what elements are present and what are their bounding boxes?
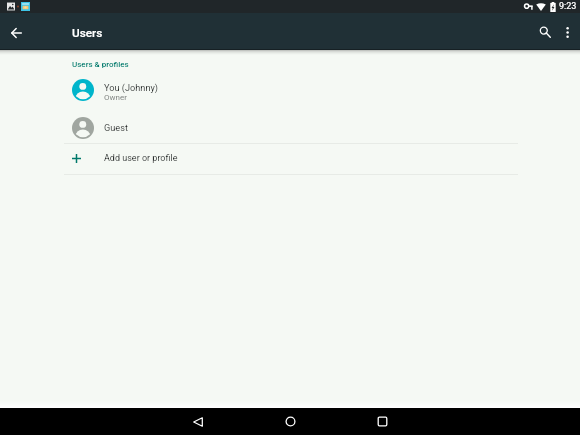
button[interactable]: Back [152,408,244,435]
button[interactable]: More options [554,19,580,45]
button[interactable]: Search [530,17,560,47]
button[interactable]: You (Johnny) [0,71,580,108]
staticText: 9:23 [559,1,577,12]
button[interactable]: Home [244,408,336,435]
button[interactable]: Add user or profile [0,142,580,175]
staticText: Users [72,26,103,40]
button[interactable]: Guest [0,109,580,146]
button[interactable]: Recent apps [336,408,428,435]
staticText: Guest [104,122,128,133]
staticText: Users & profiles [72,60,129,69]
staticText: You (Johnny) [104,82,159,93]
staticText: Add user or profile [104,153,178,164]
staticText: Owner [104,93,127,102]
button[interactable]: Navigate up [0,17,32,49]
